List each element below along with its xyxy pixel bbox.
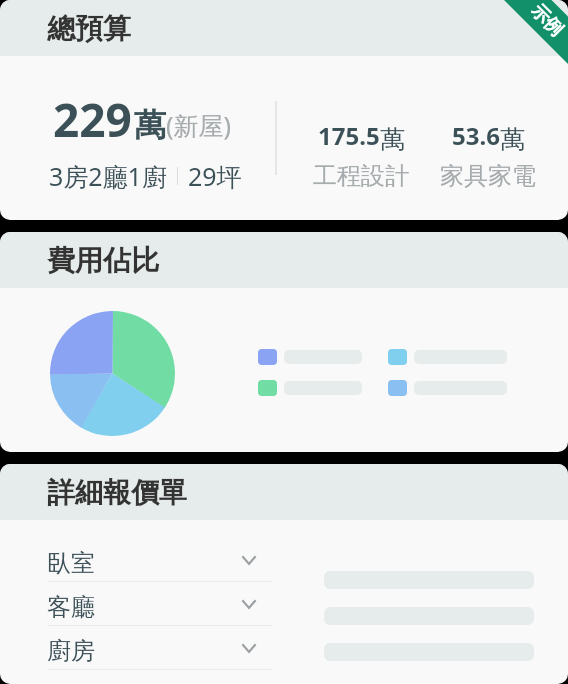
button[interactable]: Expand — [233, 544, 265, 576]
staticText: 客廳 — [47, 592, 95, 622]
staticText: 萬 — [500, 124, 525, 155]
staticText: 臥室 — [47, 548, 95, 578]
staticText: 53.6 — [452, 119, 500, 152]
staticText: 萬 — [134, 105, 166, 145]
staticText: 萬 — [380, 124, 405, 155]
staticText: 總預算 — [47, 11, 131, 46]
button[interactable]: 廚房 — [47, 626, 272, 670]
staticText: 175.5 — [318, 119, 380, 152]
staticText: 詳細報價單 — [47, 475, 187, 510]
staticText: (新屋) — [166, 108, 232, 142]
button[interactable]: Expand — [233, 632, 265, 664]
staticText: 費用佔比 — [47, 243, 159, 278]
staticText: 3房2廳1廚 — [49, 159, 167, 193]
staticText: 廚房 — [47, 636, 95, 666]
staticText: 工程設計 — [313, 161, 409, 191]
staticText: 示例 — [526, 0, 568, 41]
staticText: 家具家電 — [440, 161, 536, 191]
button[interactable]: Expand — [233, 588, 265, 620]
staticText: 229 — [53, 88, 132, 151]
button[interactable]: 客廳 — [47, 582, 272, 626]
button[interactable]: 臥室 — [47, 538, 272, 582]
staticText: 29坪 — [188, 159, 242, 193]
